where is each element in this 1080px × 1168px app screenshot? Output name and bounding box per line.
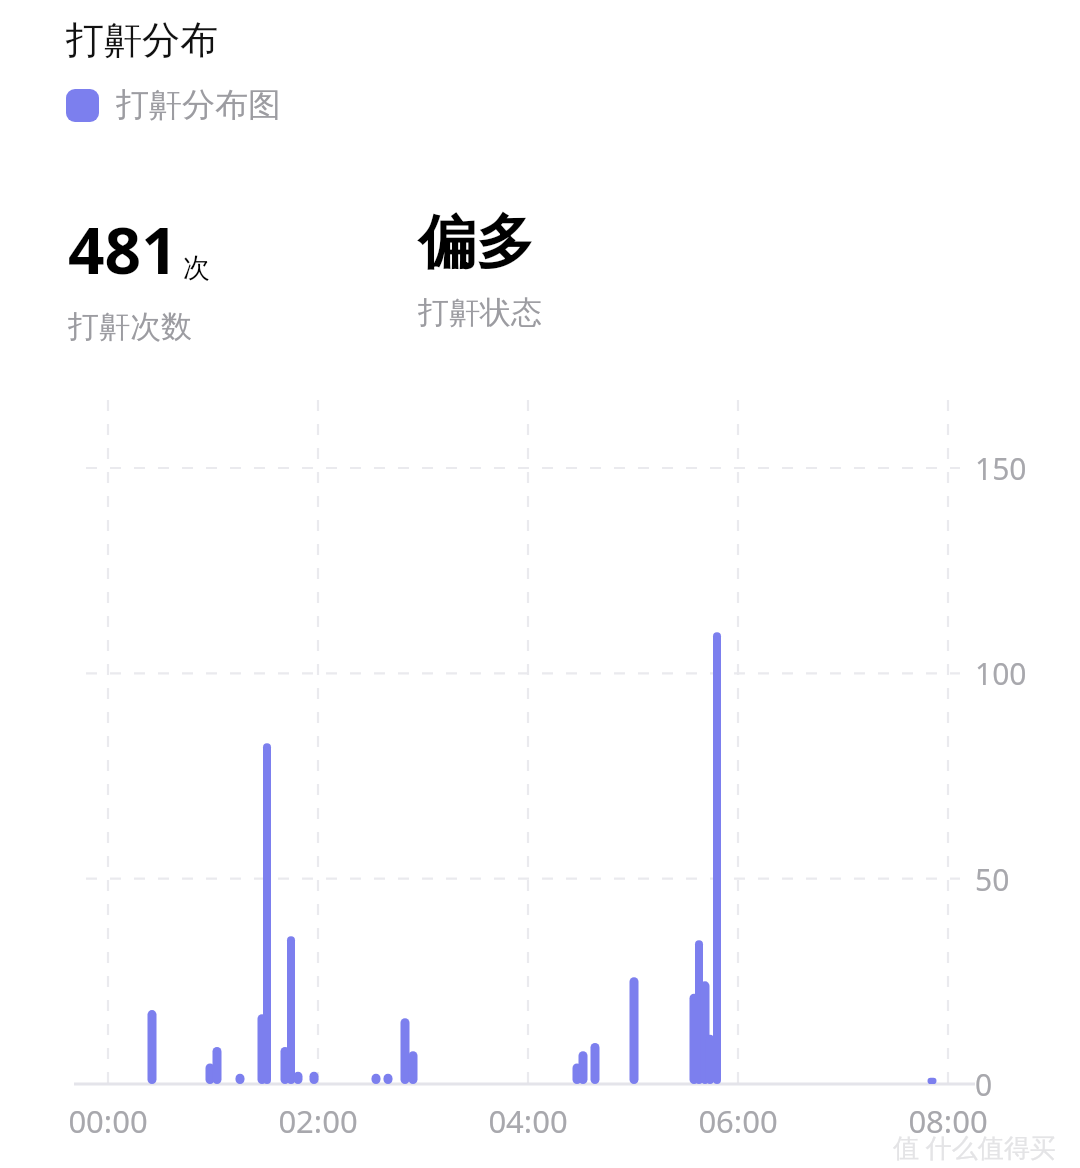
staticText: 打鼾分布图 <box>116 84 281 126</box>
staticText: 00:00 <box>28 1100 188 1142</box>
staticText: 100 <box>975 653 1027 694</box>
staticText: 481 <box>68 206 178 293</box>
staticText: 06:00 <box>658 1100 818 1142</box>
staticText: 打鼾次数 <box>68 307 192 346</box>
button[interactable]: 打鼾分布图 <box>66 84 281 126</box>
staticText: 0 <box>975 1064 993 1105</box>
staticText: 150 <box>975 448 1027 489</box>
staticText: 50 <box>975 859 1010 900</box>
staticText: 02:00 <box>238 1100 398 1142</box>
staticText: 08:00 <box>868 1100 1028 1142</box>
staticText: 次 <box>183 251 210 285</box>
staticText: 值 什么值得买 <box>893 1129 1056 1165</box>
staticText: 打鼾状态 <box>418 293 542 332</box>
staticText: 04:00 <box>448 1100 608 1142</box>
staticText: 打鼾分布 <box>66 16 218 64</box>
staticText: 偏多 <box>418 206 534 279</box>
